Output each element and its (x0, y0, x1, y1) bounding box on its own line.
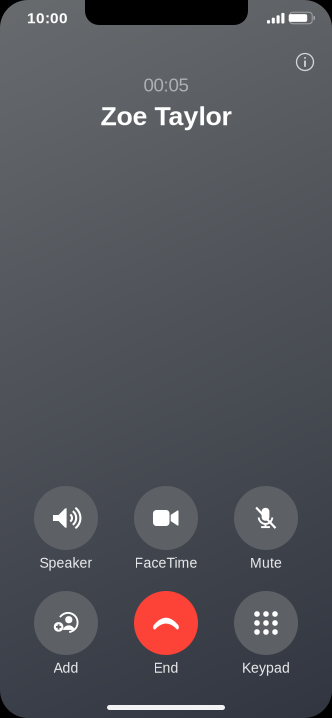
staticText: Keypad (242, 660, 290, 676)
staticText: 00:05 (143, 75, 188, 95)
button[interactable]: Keypad (216, 591, 316, 676)
staticText: Speaker (39, 555, 92, 571)
staticText: 10:00 (27, 9, 68, 26)
button[interactable]: End (116, 591, 216, 676)
staticText: Mute (250, 555, 282, 571)
staticText: Zoe Taylor (100, 101, 231, 131)
button[interactable]: FaceTime (116, 486, 216, 571)
staticText: Add (53, 660, 78, 676)
staticText: End (153, 660, 178, 676)
staticText: FaceTime (134, 555, 197, 571)
button[interactable]: Speaker (16, 486, 116, 571)
button[interactable]: Mute (216, 486, 316, 571)
button[interactable]: Add (16, 591, 116, 676)
button[interactable]: Call details (288, 45, 322, 79)
